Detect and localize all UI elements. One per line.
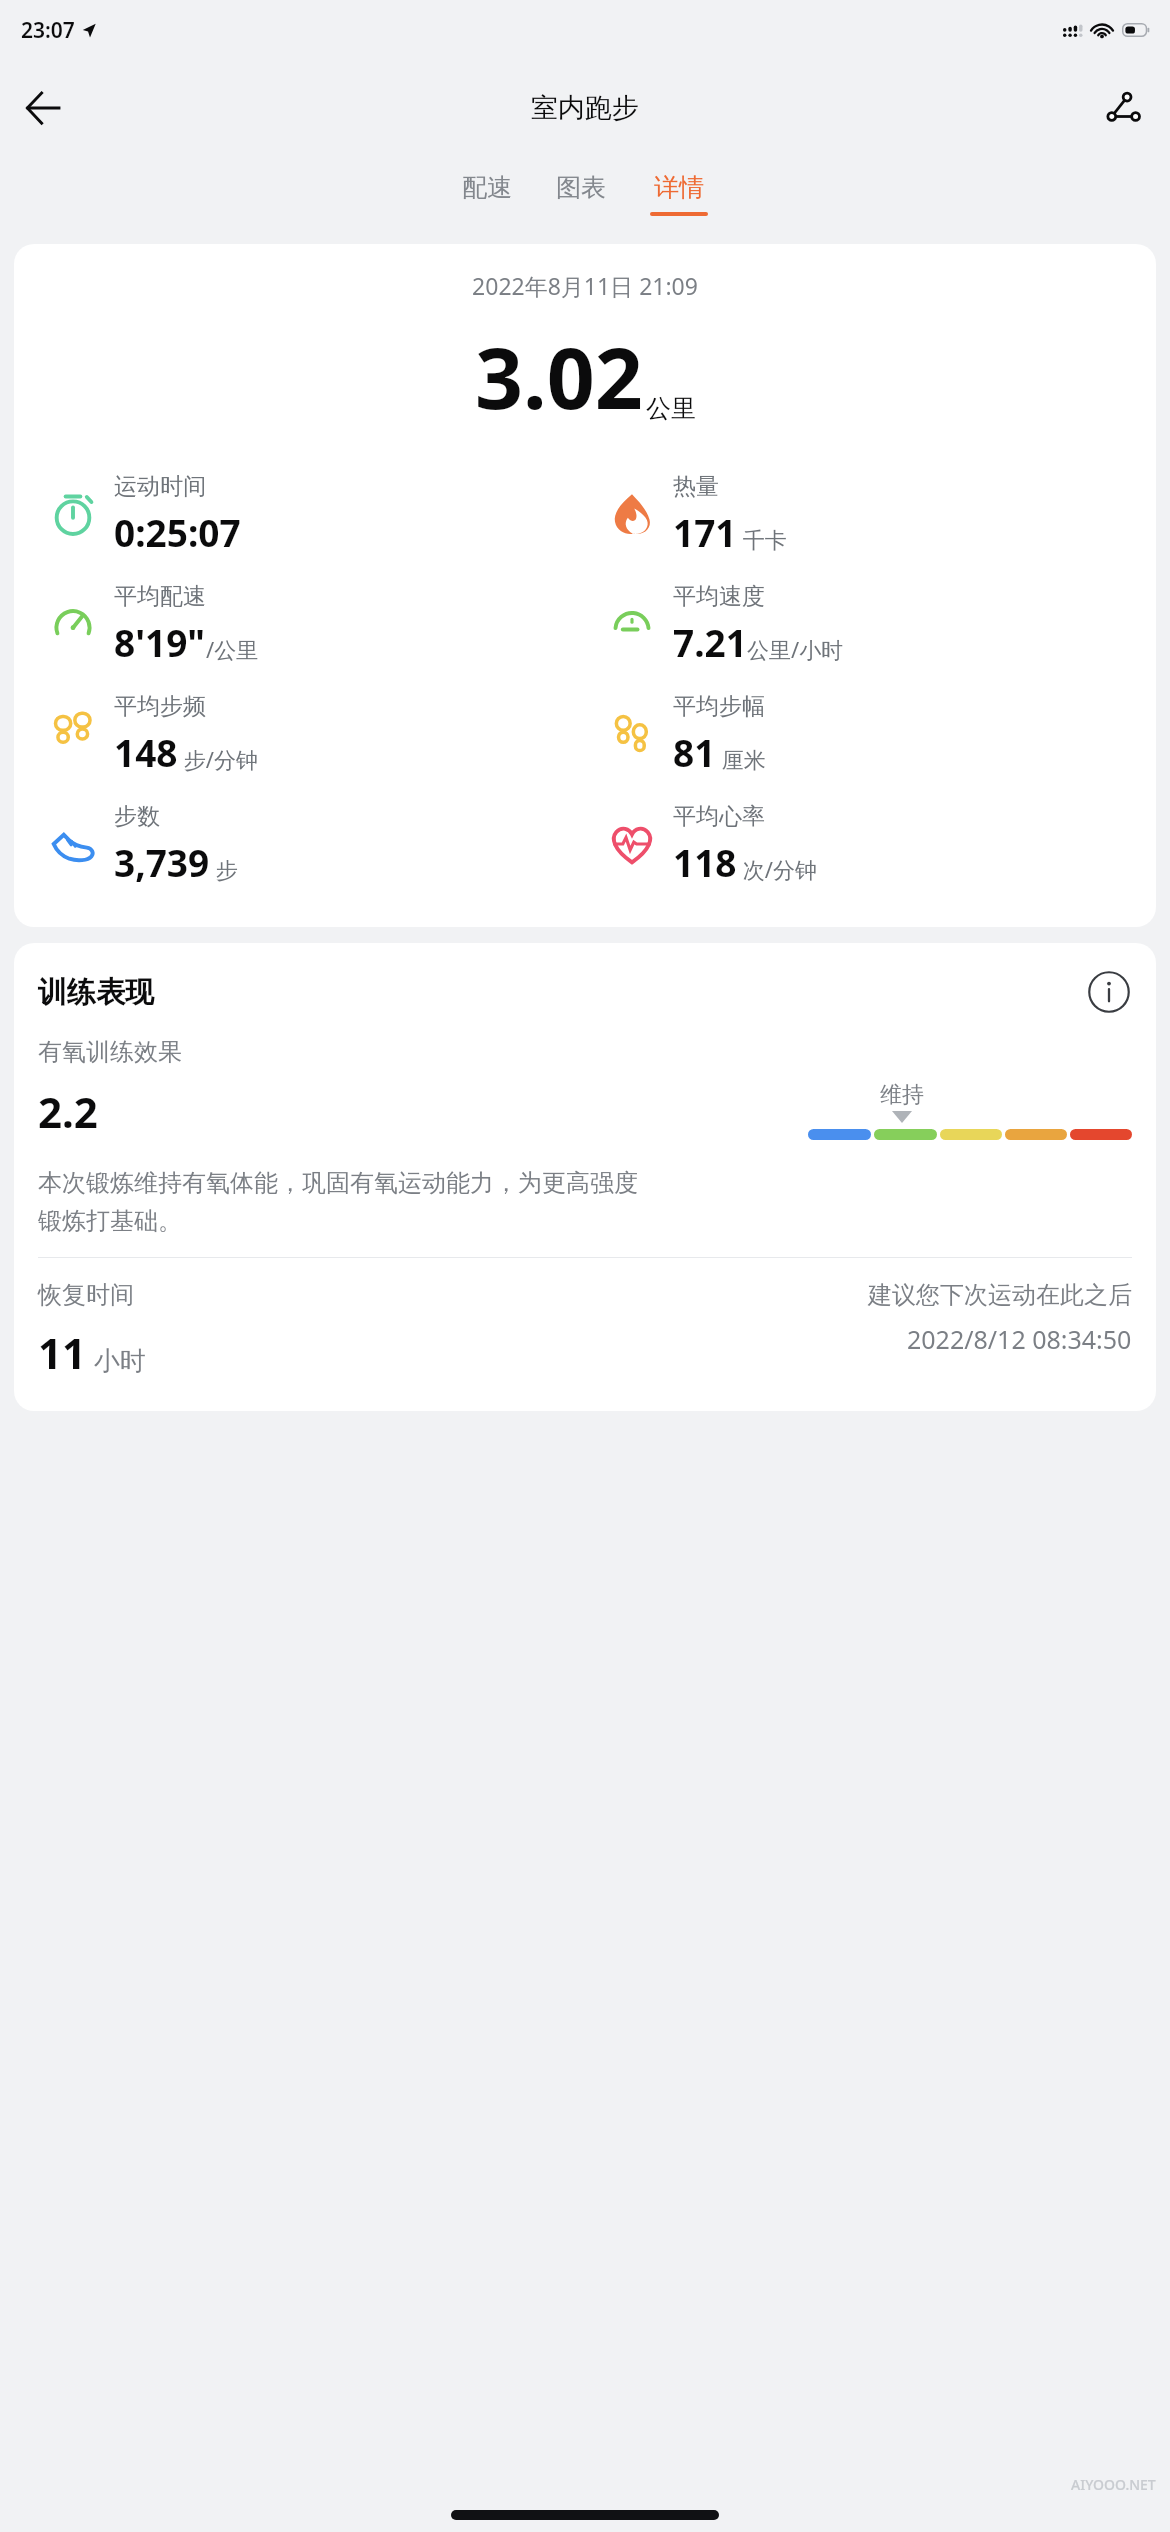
staticText: 图表 xyxy=(556,172,606,203)
staticText: /公里 xyxy=(206,634,259,664)
staticText: 3,739 xyxy=(114,837,210,887)
staticText: 步 xyxy=(210,854,238,884)
button[interactable]: 平均步幅 xyxy=(591,679,1156,789)
staticText: 148 xyxy=(114,727,178,777)
staticText: 详情 xyxy=(654,172,704,203)
staticText: AIYOOO.NET xyxy=(1071,2475,1156,2494)
staticText: 11 xyxy=(38,1324,87,1381)
button[interactable]: 步数 xyxy=(32,789,585,899)
staticText: 厘米 xyxy=(716,744,766,774)
staticText: 建议您下次运动在此之后 xyxy=(868,1280,1132,1310)
button[interactable]: 返回 xyxy=(12,77,74,139)
button[interactable]: 平均步频 xyxy=(32,679,585,789)
button[interactable]: 说明 xyxy=(1086,969,1132,1015)
staticText: 运动时间 xyxy=(114,472,206,501)
staticText: 配速 xyxy=(462,172,512,203)
staticText: 小时 xyxy=(87,1342,146,1378)
staticText: 平均速度 xyxy=(673,582,765,611)
staticText: 2.2 xyxy=(38,1083,98,1140)
staticText: 23:07 xyxy=(21,16,75,45)
staticText: 公里 xyxy=(646,393,696,424)
staticText: 3.02 xyxy=(475,319,643,433)
staticText: 8'19" xyxy=(114,617,206,667)
button[interactable]: 配速 xyxy=(454,166,520,222)
button[interactable]: 分享 xyxy=(1092,77,1154,139)
staticText: 训练表现 xyxy=(38,974,154,1011)
staticText: 平均配速 xyxy=(114,582,206,611)
staticText: 118 xyxy=(673,837,737,887)
staticText: 0:25:07 xyxy=(114,507,241,557)
button[interactable]: 平均心率 xyxy=(591,789,1156,899)
button[interactable]: 平均速度 xyxy=(591,569,1156,679)
staticText: 2022/8/12 08:34:50 xyxy=(907,1322,1132,1356)
staticText: 171 xyxy=(673,507,737,557)
staticText: 维持 xyxy=(880,1081,924,1109)
staticText: 81 xyxy=(673,727,716,777)
staticText: 次/分钟 xyxy=(737,854,817,884)
staticText: 平均步幅 xyxy=(673,692,765,721)
button[interactable]: 运动时间 xyxy=(32,459,585,569)
button[interactable]: 图表 xyxy=(548,166,614,222)
staticText: 室内跑步 xyxy=(531,91,639,125)
staticText: 2022年8月11日 21:09 xyxy=(14,270,1156,301)
staticText: 7.21 xyxy=(673,617,747,667)
staticText: 平均心率 xyxy=(673,802,765,831)
staticText: 步数 xyxy=(114,802,160,831)
button[interactable]: 详情 xyxy=(642,166,716,222)
staticText: 恢复时间 xyxy=(38,1280,134,1310)
staticText: 本次锻炼维持有氧体能，巩固有氧运动能力，为更高强度 锻炼打基础。 xyxy=(38,1168,638,1237)
staticText: 平均步频 xyxy=(114,692,206,721)
button[interactable]: 平均配速 xyxy=(32,569,585,679)
staticText: 有氧训练效果 xyxy=(38,1037,182,1067)
staticText: 步/分钟 xyxy=(178,744,258,774)
button[interactable]: 热量 xyxy=(591,459,1156,569)
staticText: 千卡 xyxy=(737,524,787,554)
staticText: 热量 xyxy=(673,472,719,501)
staticText: 公里/小时 xyxy=(747,634,844,664)
